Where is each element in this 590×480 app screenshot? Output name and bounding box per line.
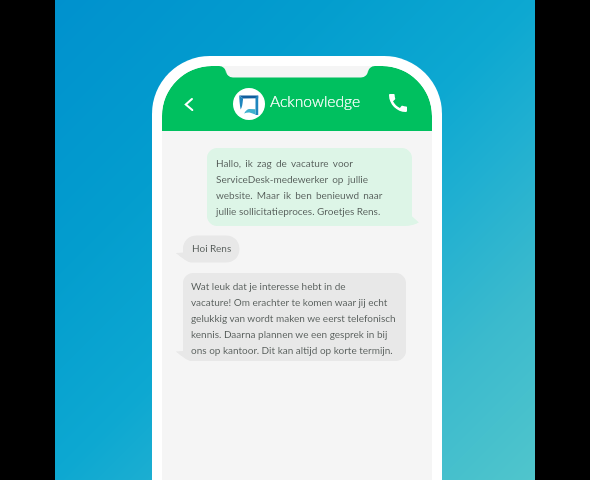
button[interactable]: Hallo, ik zag de vacature voor ServiceDe… bbox=[207, 148, 412, 226]
staticText: Hallo, ik zag de vacature voor ServiceDe… bbox=[216, 157, 383, 217]
button[interactable]: Call bbox=[385, 90, 410, 115]
staticText: Wat leuk dat je interesse hebt in de vac… bbox=[191, 280, 396, 356]
button[interactable]: Hoi Rens bbox=[183, 236, 240, 263]
button[interactable]: Wat leuk dat je interesse hebt in de vac… bbox=[183, 273, 406, 361]
staticText: Acknowledge bbox=[270, 92, 361, 111]
staticText: Hoi Rens bbox=[192, 242, 232, 254]
button[interactable]: Back bbox=[175, 91, 201, 117]
